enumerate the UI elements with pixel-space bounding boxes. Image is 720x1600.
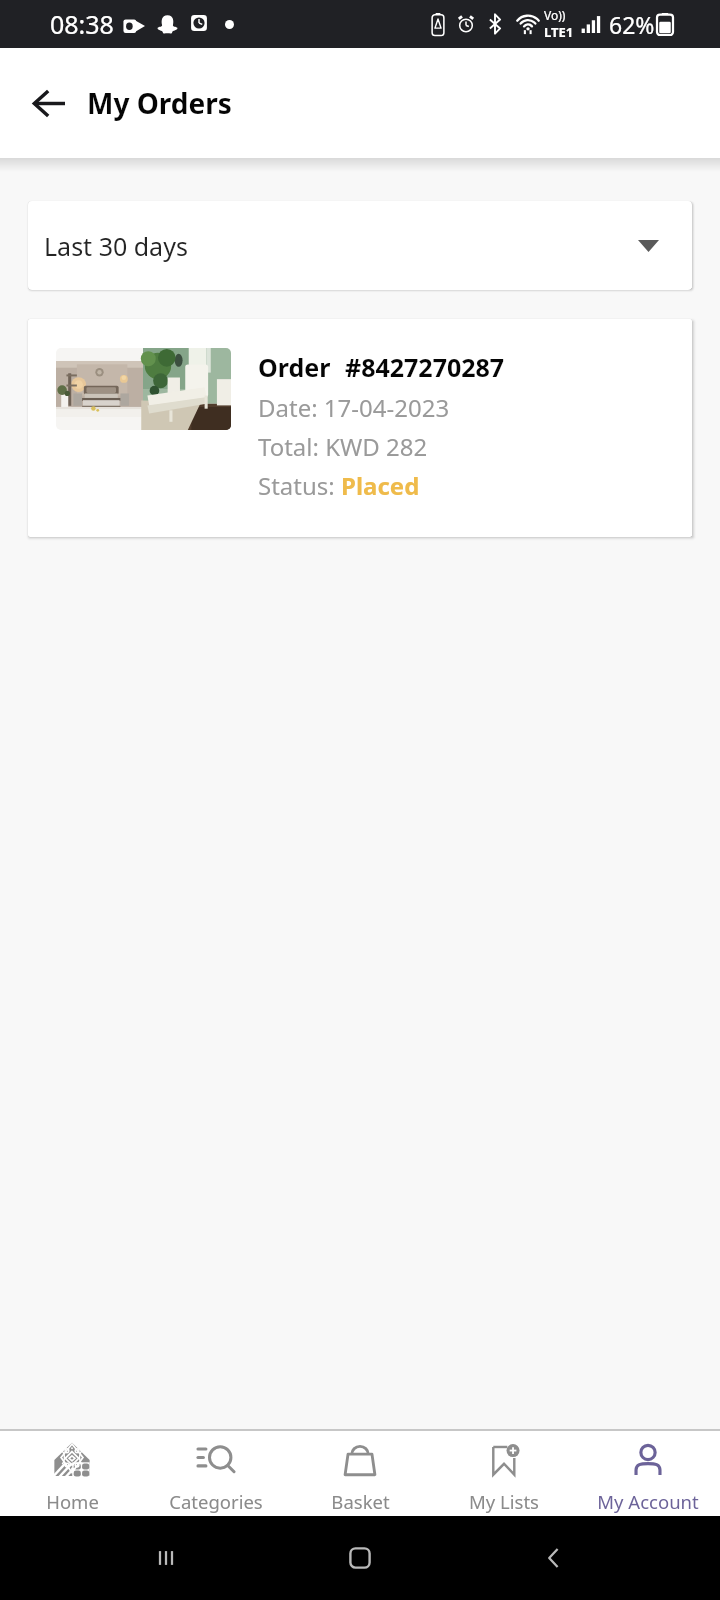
button[interactable]: Basket: [288, 1431, 432, 1516]
staticText: LTE1: [544, 23, 574, 41]
button[interactable]: Categories: [144, 1431, 288, 1516]
staticText: Home: [46, 1489, 99, 1514]
button[interactable]: Back: [526, 1530, 582, 1586]
button[interactable]: Last 30 days: [28, 201, 692, 290]
staticText: Status:: [258, 469, 341, 502]
staticText: Last 30 days: [44, 229, 188, 263]
staticText: My Orders: [87, 84, 232, 122]
button[interactable]: Order: [28, 319, 692, 537]
staticText: Date: 17-04-2023: [258, 391, 450, 424]
button[interactable]: Recents: [138, 1530, 194, 1586]
button[interactable]: Back: [17, 71, 81, 135]
staticText: Vo)): [544, 7, 566, 23]
staticText: My Account: [597, 1489, 699, 1514]
button[interactable]: My Lists: [432, 1431, 576, 1516]
staticText: 62%: [609, 9, 655, 40]
staticText: My Lists: [469, 1489, 539, 1514]
button[interactable]: Home: [0, 1431, 144, 1516]
button[interactable]: Home: [332, 1530, 388, 1586]
staticText: Total: KWD 282: [258, 430, 428, 463]
staticText: Basket: [331, 1489, 390, 1514]
button[interactable]: My Account: [576, 1431, 720, 1516]
staticText: Categories: [169, 1489, 263, 1514]
staticText: Order: [258, 350, 331, 384]
staticText: Placed: [341, 469, 420, 502]
staticText: 08:38: [50, 7, 114, 41]
staticText: #8427270287: [345, 350, 505, 384]
